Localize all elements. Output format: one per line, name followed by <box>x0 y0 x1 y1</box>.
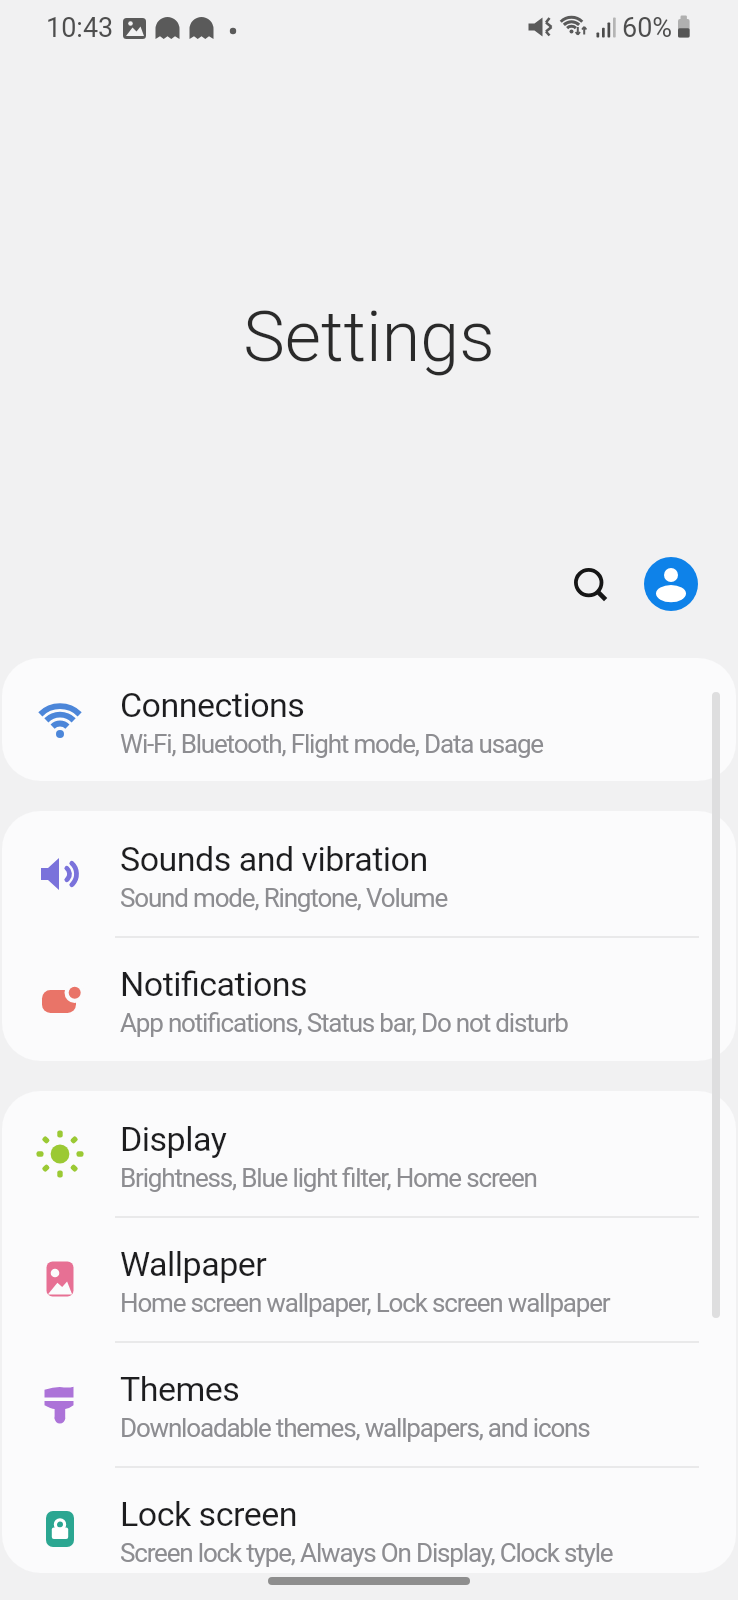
button[interactable]: Sounds and vibration <box>2 811 736 936</box>
staticText: Notifications <box>120 964 308 1004</box>
staticText: Brightness, Blue light filter, Home scre… <box>120 1163 537 1193</box>
staticText: 60% <box>622 12 673 44</box>
staticText: Settings <box>0 296 738 378</box>
staticText: Display <box>120 1119 227 1159</box>
button[interactable] <box>644 557 698 611</box>
staticText: Sound mode, Ringtone, Volume <box>120 883 448 913</box>
staticText: Lock screen <box>120 1494 297 1534</box>
staticText: Screen lock type, Always On Display, Clo… <box>120 1538 613 1568</box>
staticText: App notifications, Status bar, Do not di… <box>120 1008 568 1038</box>
staticText: Connections <box>120 685 305 725</box>
staticText: Wi-Fi, Bluetooth, Flight mode, Data usag… <box>120 729 543 759</box>
button[interactable]: Display <box>2 1091 736 1216</box>
button[interactable]: Notifications <box>2 936 736 1061</box>
staticText: 10:43 <box>46 12 114 44</box>
staticText: Sounds and vibration <box>120 839 428 879</box>
staticText: Downloadable themes, wallpapers, and ico… <box>120 1413 590 1443</box>
staticText: Wallpaper <box>120 1244 267 1284</box>
button[interactable]: Wallpaper <box>2 1216 736 1341</box>
button[interactable]: Connections <box>2 658 736 781</box>
staticText: Home screen wallpaper, Lock screen wallp… <box>120 1288 610 1318</box>
button[interactable]: Lock screen <box>2 1466 736 1573</box>
button[interactable] <box>268 1577 470 1585</box>
button[interactable] <box>561 555 617 611</box>
staticText: Themes <box>120 1369 240 1409</box>
button[interactable]: Themes <box>2 1341 736 1466</box>
